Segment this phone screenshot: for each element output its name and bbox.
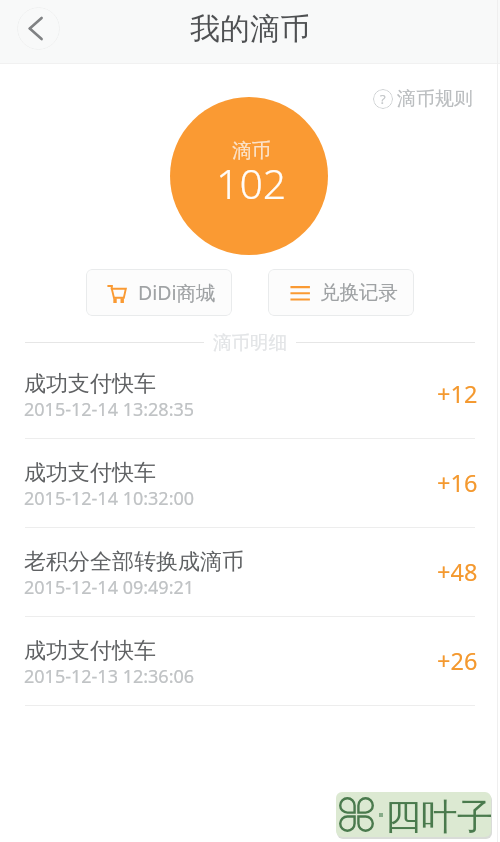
- staticText: +12: [437, 378, 478, 410]
- staticText: 滴币: [232, 138, 271, 163]
- staticText: 成功支付快车: [24, 370, 156, 398]
- staticText: 成功支付快车: [24, 637, 156, 665]
- staticText: +16: [437, 467, 478, 499]
- staticText: 2015-12-13 12:36:06: [24, 664, 195, 689]
- staticText: 成功支付快车: [24, 459, 156, 487]
- button[interactable]: ?: [371, 85, 475, 113]
- staticText: 滴币规则: [397, 87, 473, 111]
- staticText: 四叶子: [385, 794, 491, 837]
- button[interactable]: 成功支付快车: [0, 617, 500, 706]
- button[interactable]: 成功支付快车: [0, 439, 500, 528]
- staticText: 滴币明细: [213, 331, 287, 354]
- staticText: 我的滴币: [190, 10, 310, 48]
- staticText: +26: [437, 645, 478, 677]
- button[interactable]: DiDi商城: [86, 269, 232, 316]
- button[interactable]: Back: [17, 7, 60, 50]
- button[interactable]: 兑换记录: [268, 269, 414, 316]
- staticText: 102: [216, 155, 287, 211]
- staticText: +48: [437, 556, 478, 588]
- staticText: 2015-12-14 09:49:21: [24, 575, 195, 600]
- staticText: 老积分全部转换成滴币: [24, 548, 244, 576]
- staticText: DiDi商城: [138, 279, 216, 306]
- staticText: 2015-12-14 13:28:35: [24, 397, 195, 422]
- staticText: ?: [380, 90, 386, 108]
- staticText: 2015-12-14 10:32:00: [24, 486, 195, 511]
- button[interactable]: 成功支付快车: [0, 350, 500, 439]
- button[interactable]: 老积分全部转换成滴币: [0, 528, 500, 617]
- staticText: 兑换记录: [320, 280, 398, 305]
